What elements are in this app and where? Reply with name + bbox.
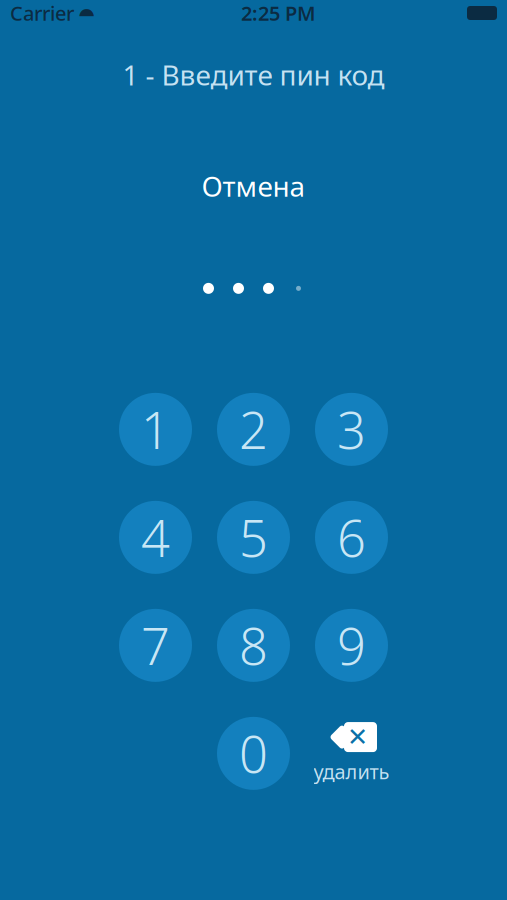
staticText: ✕ — [347, 723, 368, 751]
staticText: Carrier — [10, 0, 74, 26]
button[interactable]: 9 — [302, 596, 400, 694]
staticText: 7 — [141, 612, 170, 679]
staticText: ◗ — [80, 2, 90, 24]
button[interactable]: 8 — [204, 596, 302, 694]
staticText: 3 — [337, 396, 366, 463]
staticText: 6 — [337, 504, 366, 571]
staticText: 1 — [141, 396, 170, 463]
staticText: 4 — [141, 504, 170, 571]
button[interactable]: Удалить — [302, 704, 400, 802]
button[interactable]: 2 — [204, 380, 302, 478]
button[interactable]: 0 — [204, 704, 302, 802]
staticText: 0 — [239, 720, 268, 787]
button[interactable]: 5 — [204, 488, 302, 586]
button[interactable]: 4 — [106, 488, 204, 586]
staticText: 5 — [239, 504, 268, 571]
staticText: 1 - Введите пин код — [122, 56, 384, 93]
button[interactable]: 7 — [106, 596, 204, 694]
staticText: 2:25 PM — [241, 0, 316, 26]
button[interactable]: Отмена — [181, 161, 325, 210]
button[interactable]: 6 — [302, 488, 400, 586]
staticText: 9 — [337, 612, 366, 679]
staticText: 8 — [239, 612, 268, 679]
staticText: 2 — [239, 396, 268, 463]
staticText: Отмена — [201, 167, 305, 204]
button[interactable]: 3 — [302, 380, 400, 478]
staticText: удалить — [313, 758, 389, 785]
button[interactable]: 1 — [106, 380, 204, 478]
